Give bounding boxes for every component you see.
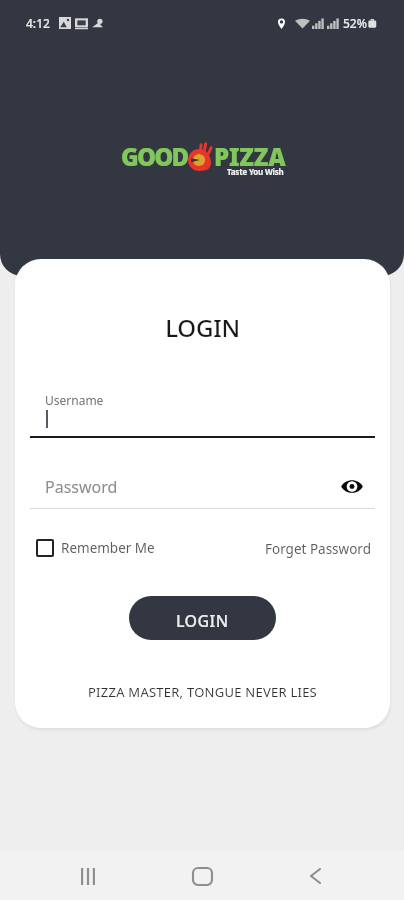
staticText: LOGIN bbox=[15, 311, 390, 344]
button[interactable]: Back bbox=[291, 852, 339, 900]
button[interactable]: Remember Me bbox=[36, 539, 155, 557]
button[interactable]: Forget Password bbox=[265, 540, 371, 558]
button[interactable]: LOGIN bbox=[129, 596, 276, 640]
staticText: Forget Password bbox=[265, 540, 371, 558]
staticText: LOGIN bbox=[176, 610, 229, 632]
staticText: GOOD bbox=[121, 140, 188, 173]
button[interactable]: Home bbox=[178, 852, 226, 900]
staticText: PIZZA MASTER, TONGUE NEVER LIES bbox=[15, 683, 390, 701]
staticText: Remember Me bbox=[61, 539, 155, 557]
staticText: 4:12 bbox=[26, 15, 50, 31]
button[interactable]: Show password bbox=[335, 469, 369, 503]
button[interactable]: Recent apps bbox=[64, 852, 112, 900]
staticText: PIZZA bbox=[214, 140, 286, 173]
staticText: Taste You Wish bbox=[227, 166, 284, 177]
staticText: 52% bbox=[343, 15, 367, 31]
staticText: Username bbox=[45, 392, 104, 408]
staticText: Password bbox=[45, 476, 118, 498]
